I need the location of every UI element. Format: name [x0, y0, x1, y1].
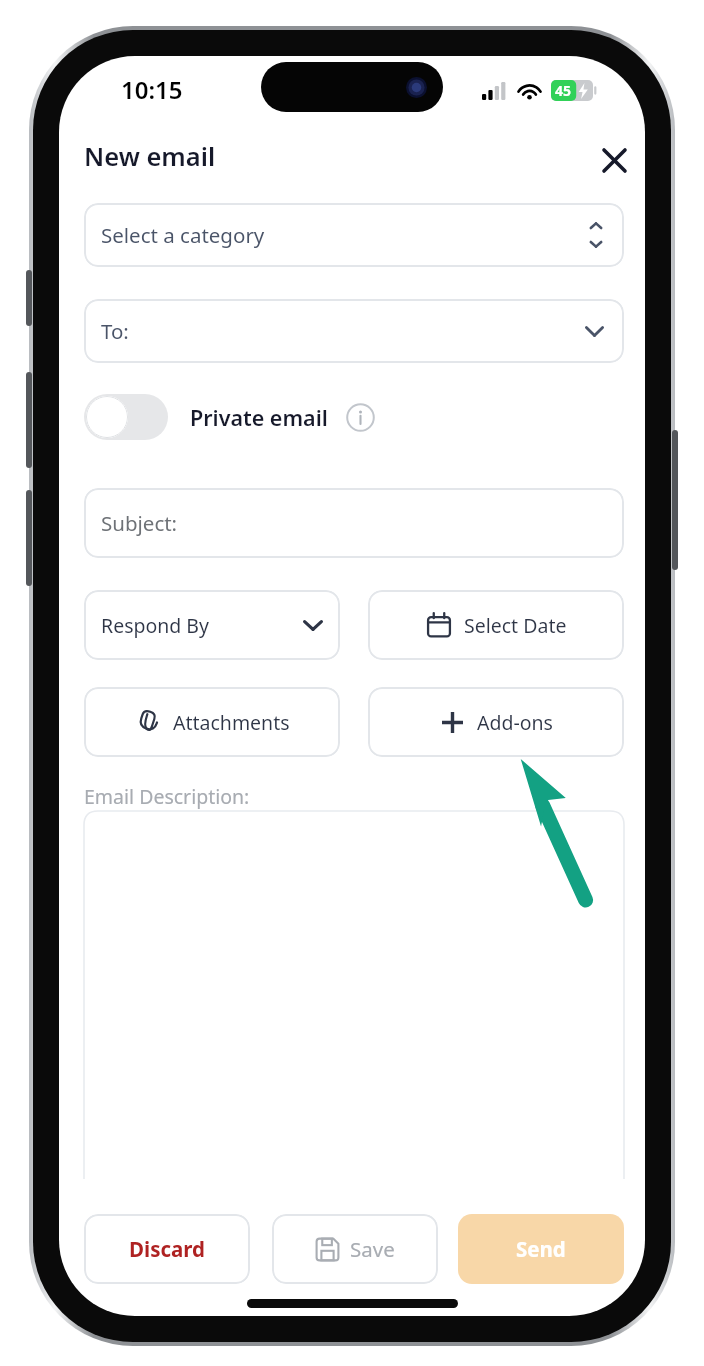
- staticText: Select a category: [101, 221, 265, 249]
- staticText: Select Date: [464, 612, 567, 639]
- button[interactable]: Discard: [84, 1214, 250, 1284]
- button[interactable]: Private email toggle: [84, 394, 168, 440]
- button[interactable]: Select Date: [368, 590, 624, 660]
- button[interactable]: Send: [458, 1214, 624, 1284]
- staticText: New email: [84, 139, 216, 174]
- button[interactable]: To:: [84, 299, 624, 363]
- button[interactable]: Attachments: [84, 687, 340, 757]
- staticText: Send: [516, 1235, 566, 1263]
- staticText: Respond By: [101, 612, 209, 639]
- staticText: Email Description:: [84, 783, 250, 810]
- staticText: Save: [350, 1235, 395, 1263]
- staticText: 45: [555, 81, 572, 100]
- button[interactable]: Respond By: [84, 590, 340, 660]
- staticText: Subject:: [101, 509, 178, 537]
- staticText: Attachments: [173, 709, 290, 736]
- button[interactable]: Select a category: [84, 203, 624, 267]
- staticText: Add-ons: [477, 709, 553, 736]
- staticText: Discard: [129, 1235, 205, 1263]
- button[interactable]: Subject:: [84, 488, 624, 558]
- button[interactable]: Info about private email: [343, 400, 377, 434]
- staticText: Private email: [190, 403, 328, 432]
- staticText: To:: [101, 317, 129, 345]
- button[interactable]: Add-ons: [368, 687, 624, 757]
- button[interactable]: Save: [272, 1214, 438, 1284]
- staticText: 10:15: [121, 73, 183, 106]
- button[interactable]: Close: [588, 134, 640, 186]
- button[interactable]: [84, 811, 624, 1179]
